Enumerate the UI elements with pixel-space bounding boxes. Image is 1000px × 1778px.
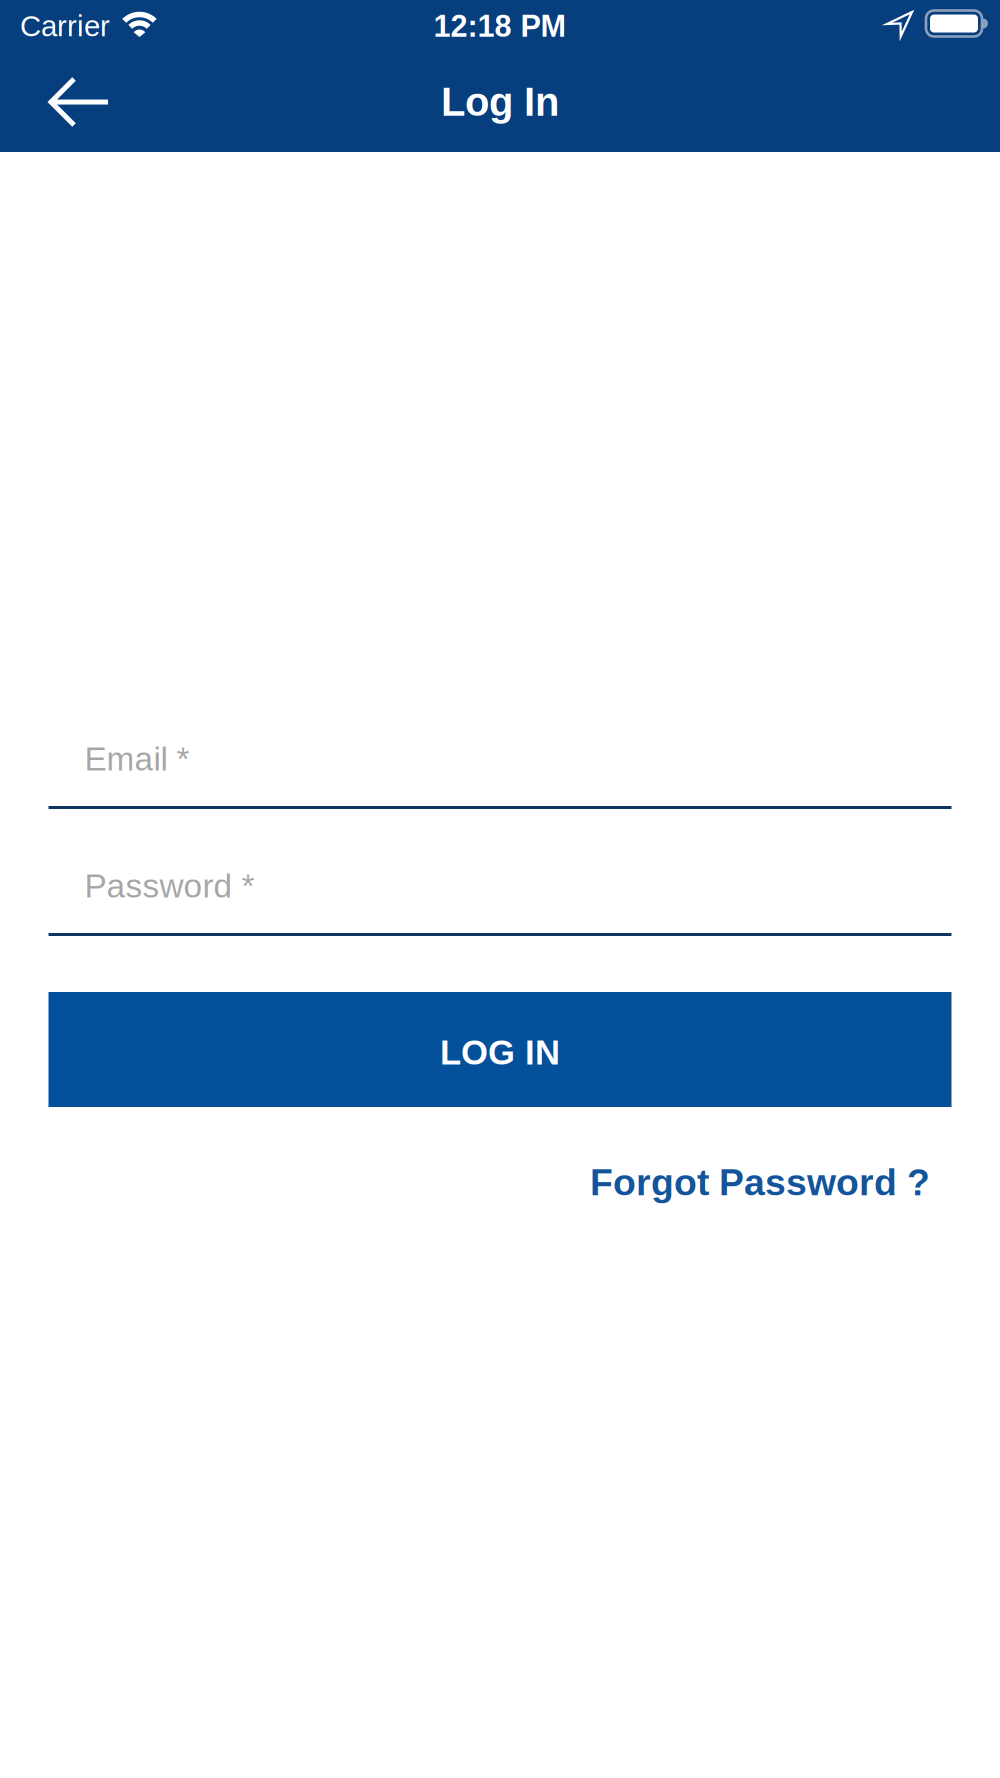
staticText: Email * [84, 741, 189, 777]
staticText: 12:18 PM [433, 9, 566, 43]
button[interactable]: LOG IN [48, 992, 951, 1107]
button[interactable]: Email [48, 738, 951, 809]
staticText: Forgot Password ? [590, 1162, 930, 1203]
staticText: Carrier [20, 10, 110, 42]
button[interactable]: Back [0, 75, 130, 129]
staticText: LOG IN [440, 1034, 560, 1071]
button[interactable]: Forgot Password ? [590, 1162, 930, 1203]
button[interactable]: Password [48, 865, 951, 936]
staticText: Log In [441, 80, 559, 124]
staticText: Password * [84, 868, 254, 904]
